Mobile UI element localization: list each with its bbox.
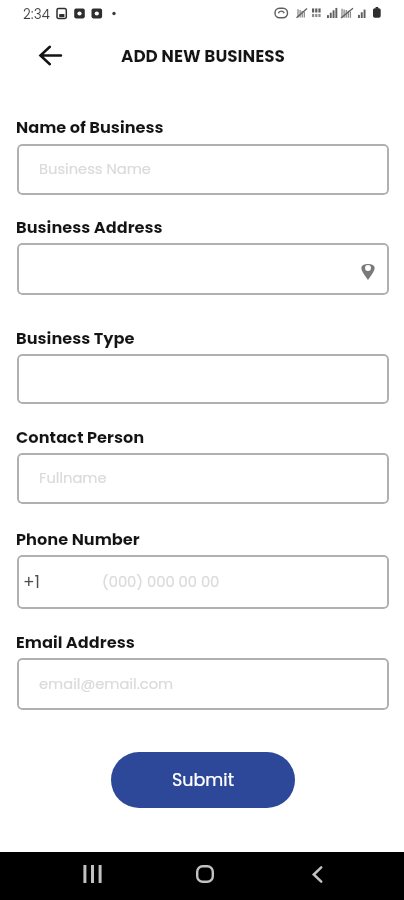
button[interactable]: email@email.com (17, 658, 389, 710)
staticText: Submit (172, 768, 235, 793)
button[interactable] (17, 354, 389, 404)
staticText: Business Name (39, 159, 151, 180)
staticText: Business Address (16, 216, 163, 239)
staticText: Email Address (16, 631, 135, 654)
staticText: Phone Number (16, 528, 140, 551)
button[interactable]: Business Name (17, 144, 389, 195)
staticText: Contact Person (16, 426, 145, 449)
button[interactable]: Back (297, 854, 337, 894)
staticText: 2:34 (23, 5, 51, 24)
staticText: Fullname (39, 468, 107, 489)
button[interactable]: Home (185, 854, 225, 894)
button[interactable]: Back (30, 35, 70, 75)
staticText: +1 (23, 570, 41, 594)
staticText: email@email.com (39, 674, 174, 695)
staticText: (000) 000 00 00 (102, 572, 220, 593)
staticText: ADD NEW BUSINESS (121, 44, 285, 68)
button[interactable]: Fullname (17, 453, 389, 504)
staticText: Name of Business (16, 116, 164, 139)
button[interactable] (17, 243, 389, 295)
button[interactable]: Recent apps (72, 854, 112, 894)
staticText: Business Type (16, 327, 135, 350)
button[interactable]: +1 (17, 555, 389, 609)
button[interactable]: Submit (111, 752, 295, 808)
